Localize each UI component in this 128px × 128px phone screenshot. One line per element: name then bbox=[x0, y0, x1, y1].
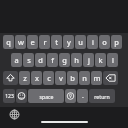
staticText: k bbox=[98, 55, 103, 65]
button[interactable]: z bbox=[19, 71, 30, 85]
button[interactable]: d bbox=[35, 53, 46, 67]
button[interactable]: h bbox=[71, 53, 82, 67]
button[interactable]: k bbox=[95, 53, 106, 67]
button[interactable]: e bbox=[27, 35, 38, 49]
button[interactable]: r bbox=[39, 35, 50, 49]
button[interactable]: Dictate bbox=[65, 89, 76, 103]
staticText: x bbox=[35, 73, 39, 83]
button[interactable]: j bbox=[83, 53, 94, 67]
staticText: . bbox=[82, 91, 84, 101]
button[interactable]: u bbox=[75, 35, 86, 49]
staticText: q bbox=[6, 37, 11, 47]
staticText: 123 bbox=[5, 93, 14, 100]
button[interactable]: c bbox=[43, 71, 54, 85]
staticText: w bbox=[18, 37, 24, 47]
button[interactable]: Switch keyboard bbox=[8, 108, 21, 121]
staticText: f bbox=[51, 55, 54, 65]
button[interactable]: x bbox=[31, 71, 42, 85]
button[interactable]: i bbox=[87, 35, 98, 49]
staticText: u bbox=[78, 37, 83, 47]
staticText: b bbox=[70, 73, 75, 83]
button[interactable]: v bbox=[55, 71, 66, 85]
staticText: e bbox=[30, 37, 35, 47]
button[interactable]: Shift bbox=[3, 71, 18, 85]
button[interactable]: Backspace bbox=[103, 71, 118, 85]
button[interactable]: n bbox=[79, 71, 90, 85]
button[interactable]: f bbox=[47, 53, 58, 67]
staticText: v bbox=[59, 73, 63, 83]
button[interactable]: o bbox=[99, 35, 110, 49]
button[interactable]: p bbox=[111, 35, 122, 49]
staticText: z bbox=[23, 73, 27, 83]
staticText: i bbox=[92, 37, 94, 47]
staticText: s bbox=[27, 55, 31, 65]
button[interactable]: a bbox=[11, 53, 22, 67]
button[interactable]: space bbox=[28, 89, 64, 103]
staticText: h bbox=[74, 55, 79, 65]
staticText: y bbox=[67, 37, 71, 47]
button[interactable]: t bbox=[51, 35, 62, 49]
button[interactable]: . bbox=[77, 89, 88, 103]
button[interactable]: Emoji bbox=[16, 89, 27, 103]
staticText: t bbox=[55, 37, 58, 47]
staticText: space bbox=[39, 93, 54, 100]
staticText: g bbox=[62, 55, 67, 65]
button[interactable]: s bbox=[23, 53, 34, 67]
staticText: n bbox=[82, 73, 87, 83]
button[interactable]: y bbox=[63, 35, 74, 49]
button[interactable]: q bbox=[3, 35, 14, 49]
staticText: return bbox=[94, 93, 110, 100]
staticText: p bbox=[114, 37, 119, 47]
staticText: m bbox=[93, 73, 101, 83]
staticText: a bbox=[14, 55, 19, 65]
staticText: d bbox=[38, 55, 43, 65]
staticText: j bbox=[88, 55, 90, 65]
staticText: c bbox=[47, 73, 51, 83]
button[interactable]: b bbox=[67, 71, 78, 85]
button[interactable]: g bbox=[59, 53, 70, 67]
button[interactable]: return bbox=[89, 89, 115, 103]
staticText: o bbox=[102, 37, 107, 47]
button[interactable]: 123 bbox=[3, 89, 15, 103]
button[interactable]: m bbox=[91, 71, 102, 85]
staticText: l bbox=[112, 55, 114, 65]
button[interactable]: w bbox=[15, 35, 26, 49]
staticText: r bbox=[43, 37, 47, 47]
button[interactable]: l bbox=[107, 53, 118, 67]
